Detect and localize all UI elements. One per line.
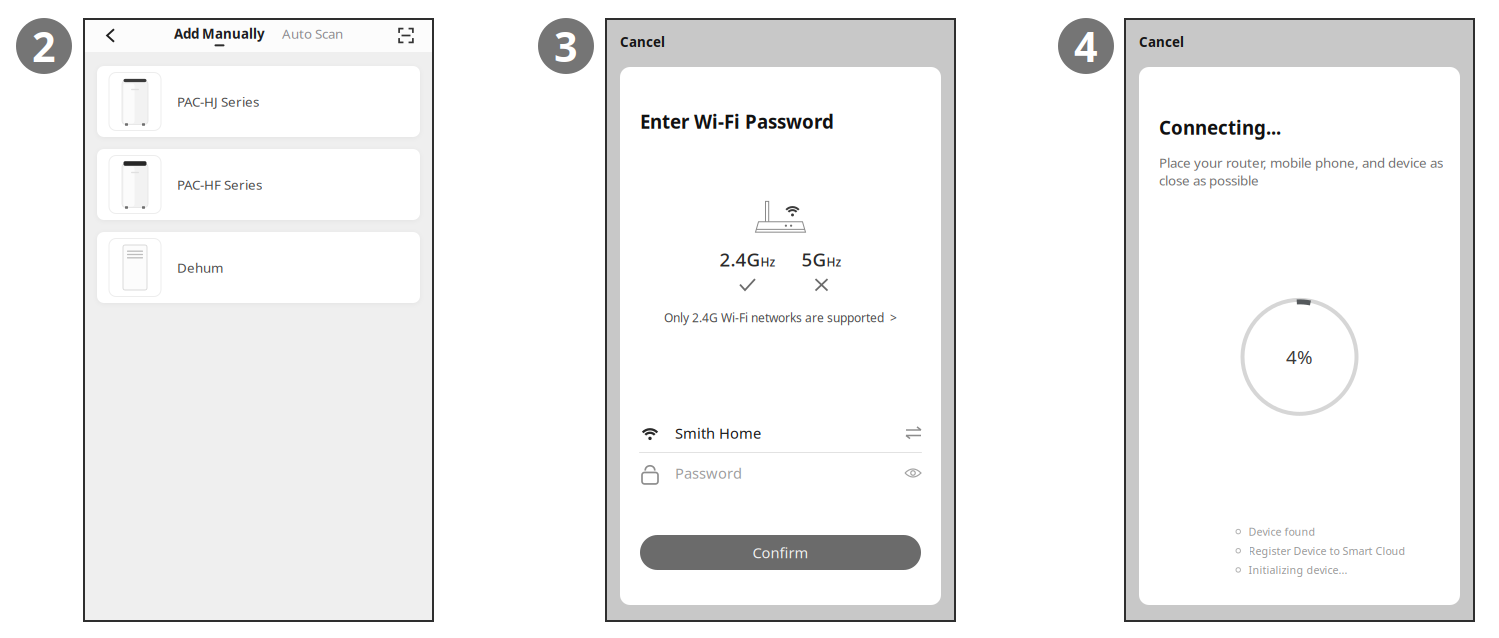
- button[interactable]: Dehum: [97, 232, 420, 303]
- staticText: 5G: [801, 247, 826, 272]
- button[interactable]: PAC-HF Series: [97, 149, 420, 220]
- staticText: Enter Wi-Fi Password: [640, 109, 834, 134]
- button[interactable]: Add Manually: [174, 25, 265, 46]
- staticText: 2.4G: [719, 247, 760, 272]
- button[interactable]: Confirm: [640, 535, 921, 570]
- button[interactable]: Smith Home: [639, 414, 922, 452]
- staticText: Place your router, mobile phone, and dev…: [1159, 154, 1443, 189]
- staticText: 4: [1074, 19, 1098, 73]
- staticText: 3: [554, 19, 578, 73]
- button[interactable]: Cancel: [1125, 28, 1184, 56]
- staticText: Only 2.4G Wi-Fi networks are supported >: [664, 310, 897, 325]
- staticText: Cancel: [620, 33, 665, 51]
- button[interactable]: Back: [96, 18, 126, 52]
- staticText: Connecting...: [1159, 115, 1281, 140]
- staticText: Add Manually: [174, 25, 265, 42]
- staticText: Dehum: [177, 259, 223, 276]
- staticText: Auto Scan: [282, 25, 343, 42]
- staticText: 2: [32, 19, 56, 73]
- button[interactable]: Scan QR code: [391, 18, 421, 52]
- button[interactable]: PAC-HJ Series: [97, 66, 420, 137]
- staticText: Cancel: [1139, 33, 1184, 51]
- staticText: Hz: [826, 254, 841, 270]
- staticText: Device found: [1248, 524, 1315, 539]
- staticText: Hz: [760, 254, 775, 270]
- button[interactable]: Password: [639, 453, 922, 493]
- staticText: Smith Home: [675, 423, 761, 443]
- staticText: 4%: [1286, 344, 1313, 369]
- button[interactable]: Auto Scan: [282, 25, 343, 46]
- staticText: PAC-HF Series: [177, 176, 262, 193]
- button[interactable]: Cancel: [606, 28, 665, 56]
- staticText: Initializing device...: [1248, 563, 1347, 577]
- staticText: Password: [675, 463, 742, 483]
- staticText: PAC-HJ Series: [177, 93, 259, 110]
- staticText: Confirm: [752, 543, 808, 562]
- button[interactable]: Only 2.4G Wi-Fi networks are supported >: [664, 306, 897, 329]
- staticText: Register Device to Smart Cloud: [1248, 544, 1405, 558]
